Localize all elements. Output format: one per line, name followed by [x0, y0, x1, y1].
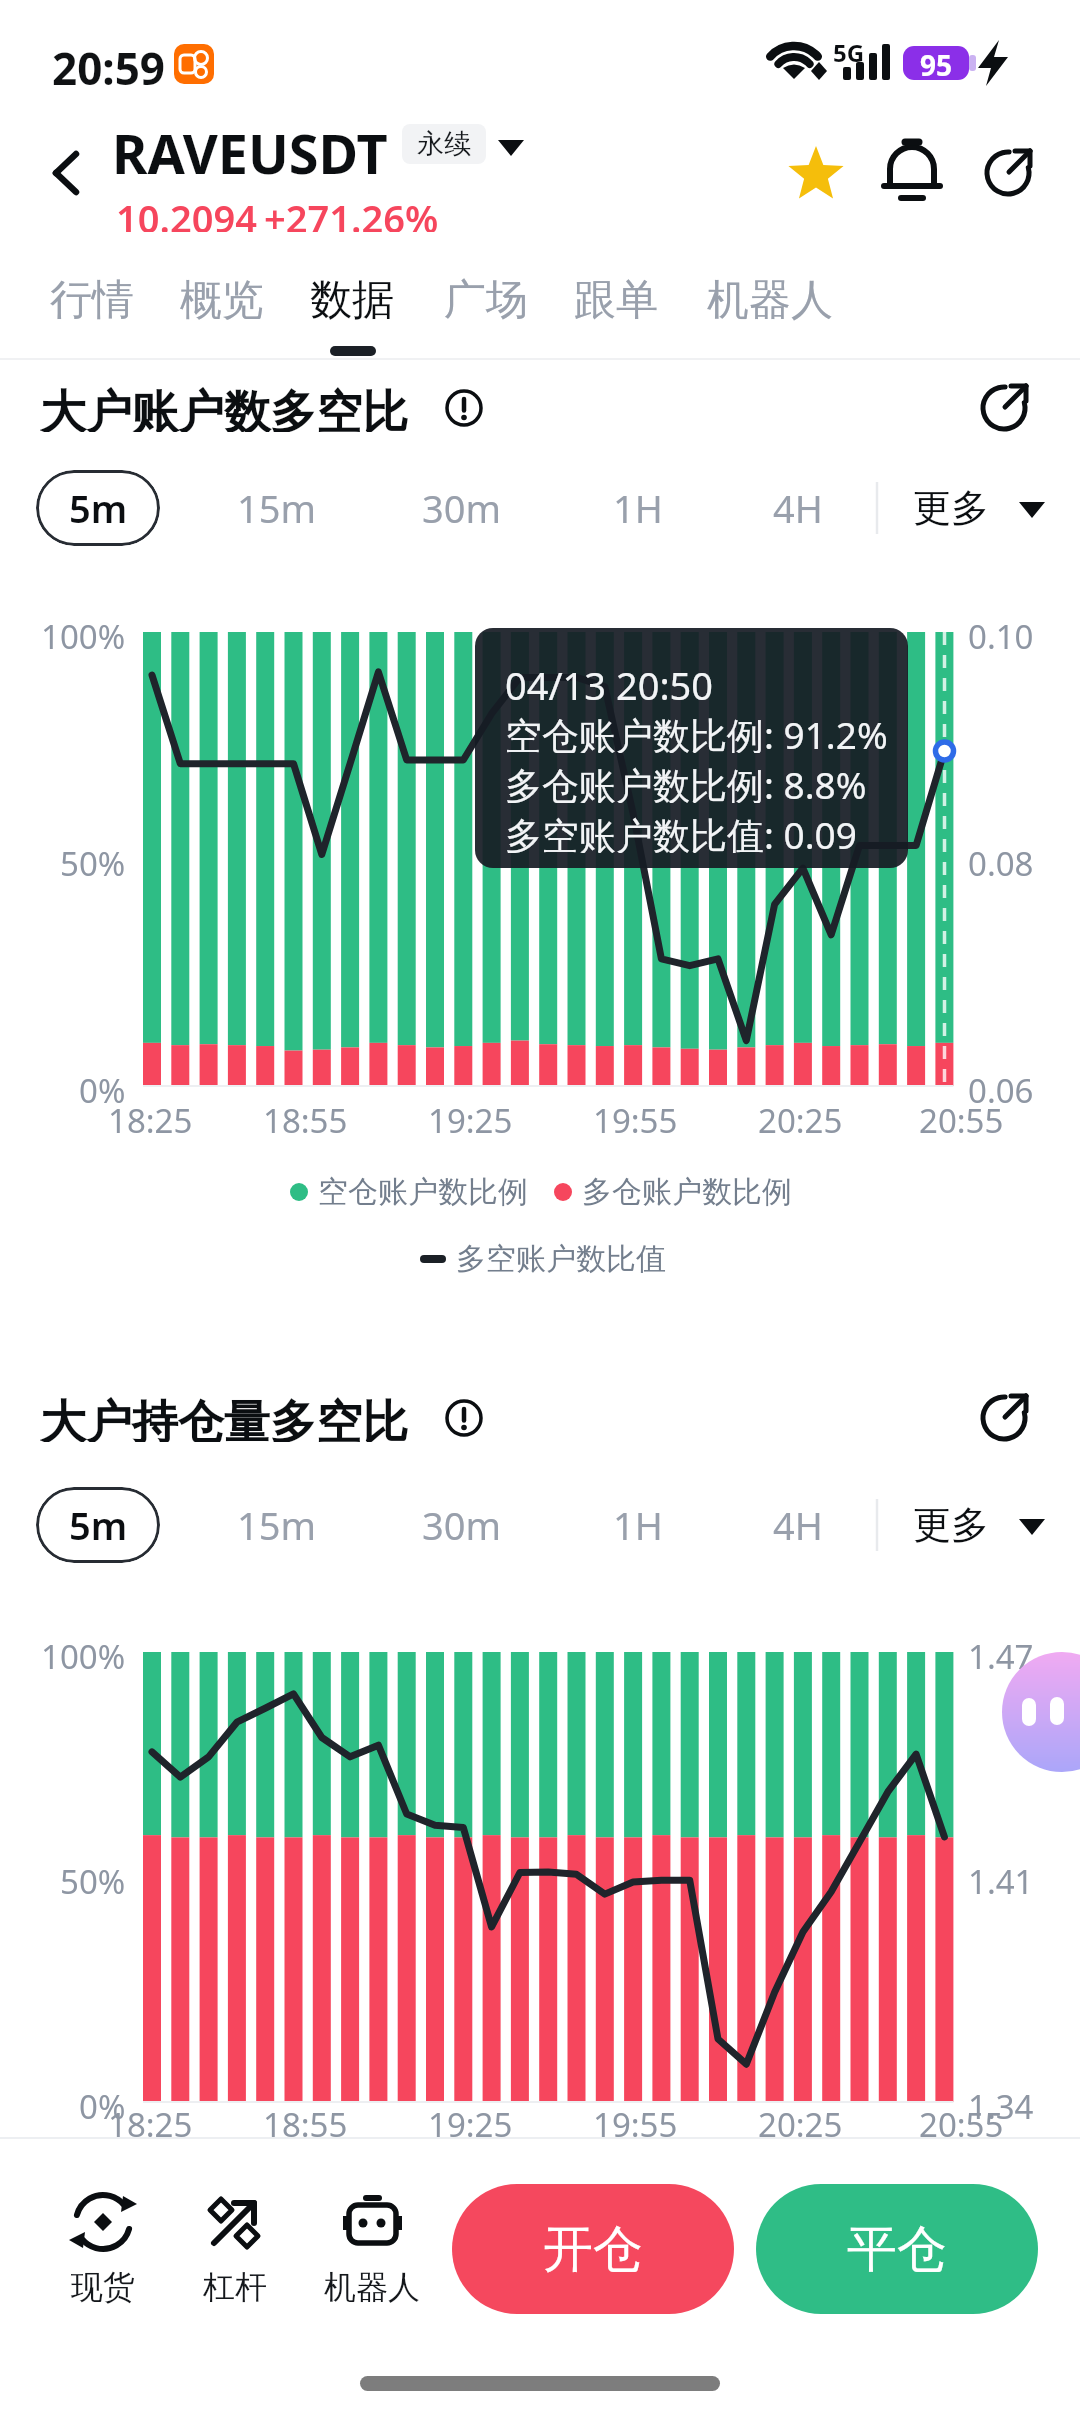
- staticText: 机器人: [707, 274, 833, 327]
- button[interactable]: [978, 1392, 1030, 1444]
- staticText: 多仓账户数比例: [582, 1173, 792, 1211]
- staticText: 数据: [310, 274, 394, 327]
- staticText: 机器人: [324, 2267, 420, 2307]
- staticText: 0%: [79, 2084, 126, 2120]
- staticText: 杠杆: [203, 2267, 267, 2307]
- staticText: 平仓: [847, 2218, 947, 2281]
- staticText: 20:25: [758, 2102, 843, 2146]
- button[interactable]: 15m: [222, 1487, 332, 1563]
- staticText: 广场: [444, 274, 528, 327]
- staticText: 更多: [913, 484, 989, 532]
- staticText: 5G: [833, 36, 865, 64]
- staticText: 95: [920, 46, 953, 80]
- staticText: 19:25: [428, 1098, 513, 1138]
- staticText: 空仓账户数比例: 91.2%: [505, 709, 888, 753]
- staticText: 空仓账户数比例: [318, 1173, 528, 1211]
- staticText: 04/13 20:50: [505, 659, 714, 703]
- button[interactable]: 1H: [583, 470, 693, 546]
- staticText: 100%: [41, 614, 126, 650]
- staticText: 跟单: [574, 274, 658, 327]
- staticText: 20:55: [919, 1098, 1004, 1138]
- staticText: 1.47: [968, 1634, 1034, 1670]
- staticText: 永续: [417, 127, 471, 161]
- button[interactable]: [980, 145, 1038, 203]
- staticText: 大户持仓量多空比: [40, 1394, 408, 1442]
- staticText: 50%: [60, 841, 126, 877]
- button[interactable]: 15m: [222, 470, 332, 546]
- button[interactable]: 行情: [27, 272, 157, 328]
- staticText: 18:55: [263, 2102, 348, 2146]
- staticText: 0%: [79, 1068, 126, 1104]
- staticText: 19:25: [428, 2102, 513, 2146]
- staticText: 1H: [613, 482, 663, 534]
- button[interactable]: [187, 2177, 283, 2317]
- staticText: RAVEUSDT: [112, 116, 388, 180]
- button[interactable]: 更多: [896, 1487, 1006, 1563]
- button[interactable]: 更多: [896, 470, 1006, 546]
- staticText: 概览: [180, 274, 264, 327]
- staticText: 20:55: [919, 2102, 1004, 2146]
- button[interactable]: 5m: [36, 470, 160, 546]
- staticText: 30m: [422, 1499, 502, 1551]
- button[interactable]: [1002, 1652, 1080, 1772]
- staticText: 0.06: [968, 1068, 1034, 1104]
- staticText: 15m: [237, 482, 317, 534]
- staticText: 19:55: [593, 1098, 678, 1138]
- button[interactable]: [440, 384, 488, 432]
- staticText: 5m: [69, 1499, 128, 1551]
- button[interactable]: 机器人: [685, 272, 855, 328]
- staticText: 0.08: [968, 841, 1034, 877]
- staticText: 20:59: [52, 38, 166, 94]
- staticText: 开仓: [543, 2218, 643, 2281]
- staticText: 4H: [773, 1499, 823, 1551]
- button[interactable]: 30m: [407, 1487, 517, 1563]
- staticText: 30m: [422, 482, 502, 534]
- button[interactable]: [440, 1394, 488, 1442]
- button[interactable]: 跟单: [551, 272, 681, 328]
- button[interactable]: [36, 134, 92, 210]
- staticText: 18:25: [108, 2102, 193, 2146]
- button[interactable]: [884, 145, 942, 203]
- staticText: 1H: [613, 1499, 663, 1551]
- staticText: +271.26%: [264, 192, 439, 232]
- staticText: 大户账户数多空比: [40, 384, 408, 432]
- staticText: 现货: [71, 2267, 135, 2307]
- staticText: 多空账户数比值: [456, 1240, 666, 1278]
- staticText: 15m: [237, 1499, 317, 1551]
- staticText: 多空账户数比值: 0.09: [505, 809, 857, 853]
- button[interactable]: 1H: [583, 1487, 693, 1563]
- button[interactable]: 平仓: [756, 2184, 1038, 2314]
- staticText: 10.2094: [116, 192, 257, 232]
- staticText: 0.10: [968, 614, 1034, 650]
- button[interactable]: 5m: [36, 1487, 160, 1563]
- button[interactable]: [788, 145, 846, 203]
- staticText: 19:55: [593, 2102, 678, 2146]
- button[interactable]: 数据: [287, 272, 417, 328]
- button[interactable]: 4H: [743, 470, 853, 546]
- button[interactable]: 永续: [402, 124, 486, 164]
- staticText: 1.41: [968, 1859, 1034, 1895]
- staticText: 18:25: [108, 1098, 193, 1138]
- button[interactable]: 开仓: [452, 2184, 734, 2314]
- button[interactable]: 30m: [407, 470, 517, 546]
- staticText: 1.34: [968, 2084, 1034, 2120]
- button[interactable]: 广场: [421, 272, 551, 328]
- staticText: 20:25: [758, 1098, 843, 1138]
- button[interactable]: [320, 2177, 424, 2317]
- button[interactable]: 4H: [743, 1487, 853, 1563]
- button[interactable]: [55, 2177, 151, 2317]
- staticText: 4H: [773, 482, 823, 534]
- staticText: 更多: [913, 1501, 989, 1549]
- button[interactable]: 概览: [157, 272, 287, 328]
- staticText: 行情: [50, 274, 134, 327]
- staticText: 100%: [41, 1634, 126, 1670]
- staticText: 50%: [60, 1859, 126, 1895]
- button[interactable]: [978, 382, 1030, 434]
- staticText: 5m: [69, 482, 128, 534]
- staticText: 多仓账户数比例: 8.8%: [505, 759, 867, 803]
- staticText: 18:55: [263, 1098, 348, 1138]
